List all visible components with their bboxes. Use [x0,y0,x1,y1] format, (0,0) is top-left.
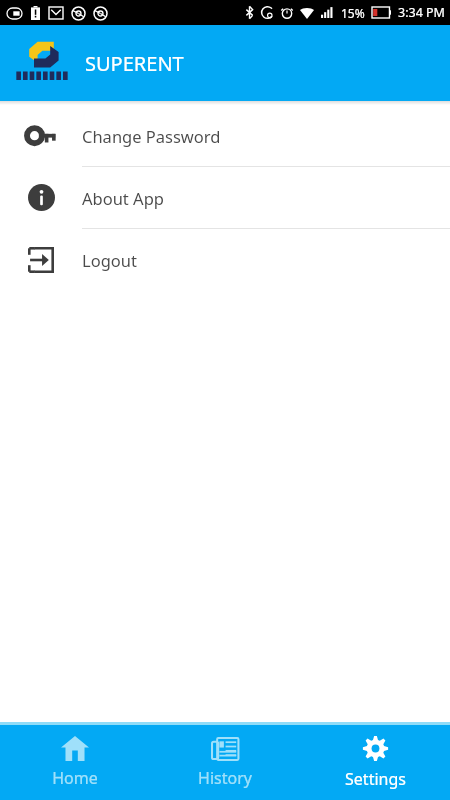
staticText: Settings [345,768,406,790]
staticText: History [198,767,252,789]
staticText: 15% [341,5,365,21]
staticText: About App [82,187,164,209]
staticText: 3:34 PM [398,4,445,21]
button[interactable]: Home [0,725,150,800]
button[interactable]: Settings [300,725,450,800]
button[interactable]: Change Password [0,105,450,166]
staticText: Change Password [82,125,221,147]
staticText: Home [52,767,98,789]
button[interactable]: Logout [0,229,450,290]
button[interactable]: About App [0,167,450,228]
staticText: SUPERENT [85,50,184,77]
button[interactable]: History [150,725,300,800]
staticText: Logout [82,249,137,271]
